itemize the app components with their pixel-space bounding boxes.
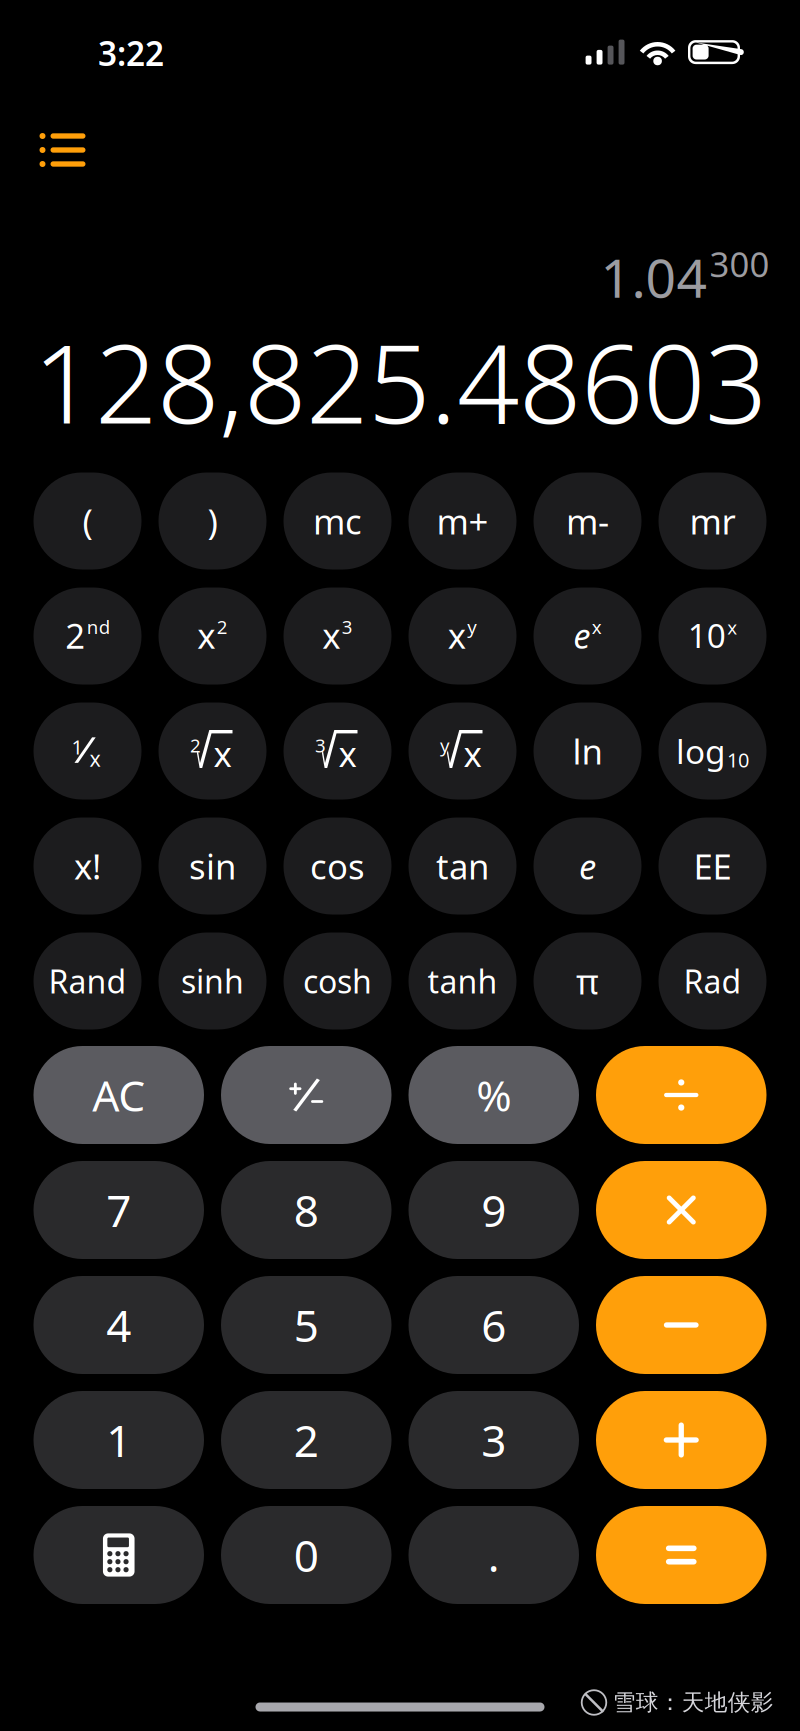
staticText: 300 xyxy=(709,241,769,287)
button[interactable]: ) xyxy=(158,472,266,569)
staticText: tan xyxy=(436,843,489,889)
staticText: x xyxy=(727,615,737,640)
button[interactable]: cos xyxy=(283,817,391,914)
button[interactable]: ( xyxy=(33,472,141,569)
staticText: 2 xyxy=(190,733,201,758)
button[interactable]: 2 xyxy=(158,702,266,799)
staticText: 3:22 xyxy=(98,31,164,75)
button[interactable]: 3 xyxy=(283,702,391,799)
button[interactable]: sinh xyxy=(158,932,266,1029)
staticText: x xyxy=(338,730,356,776)
button[interactable]: EE xyxy=(658,817,766,914)
staticText: Rand xyxy=(48,960,126,1002)
staticText: nd xyxy=(87,614,110,639)
button[interactable]: x xyxy=(158,587,266,684)
staticText: x xyxy=(322,612,340,658)
button[interactable]: 6 xyxy=(408,1276,579,1374)
staticText: x xyxy=(448,612,466,658)
button[interactable] xyxy=(596,1506,766,1604)
button[interactable] xyxy=(33,1506,204,1604)
button[interactable]: 1 xyxy=(33,702,141,799)
button[interactable]: mc xyxy=(283,472,391,569)
button[interactable]: . xyxy=(408,1506,579,1604)
button[interactable]: History xyxy=(19,113,105,187)
staticText: y xyxy=(467,614,477,639)
button[interactable]: y xyxy=(408,702,516,799)
staticText: mr xyxy=(689,498,735,544)
button[interactable]: 2 xyxy=(33,587,141,684)
staticText: m- xyxy=(566,498,609,544)
staticText: log xyxy=(676,729,726,773)
staticText: 2 xyxy=(65,612,85,658)
button[interactable]: m- xyxy=(533,472,641,569)
staticText: Rad xyxy=(683,960,741,1002)
button[interactable]: m+ xyxy=(408,472,516,569)
staticText: e xyxy=(579,843,596,889)
button[interactable]: 3 xyxy=(408,1391,579,1489)
staticText: % xyxy=(476,1067,511,1123)
button[interactable]: 1 xyxy=(33,1391,204,1489)
staticText: 3 xyxy=(481,1411,506,1469)
button[interactable]: x xyxy=(408,587,516,684)
staticText: 128,825.48603 xyxy=(33,308,767,454)
staticText: x xyxy=(89,744,100,773)
button[interactable] xyxy=(596,1391,766,1489)
staticText: AC xyxy=(92,1067,145,1123)
button[interactable]: cosh xyxy=(283,932,391,1029)
staticText: EE xyxy=(693,843,731,889)
button[interactable]: 10 xyxy=(658,587,766,684)
staticText: 2 xyxy=(217,614,228,639)
button[interactable]: e xyxy=(533,587,641,684)
staticText: 1.04 xyxy=(600,242,707,312)
staticText: mc xyxy=(313,498,362,544)
button[interactable]: ln xyxy=(533,702,641,799)
staticText: tanh xyxy=(427,960,497,1002)
staticText: 3 xyxy=(315,733,326,758)
button[interactable]: π xyxy=(533,932,641,1029)
button[interactable]: mr xyxy=(658,472,766,569)
button[interactable]: AC xyxy=(33,1046,204,1144)
button[interactable]: tanh xyxy=(408,932,516,1029)
button[interactable]: Rand xyxy=(33,932,141,1029)
button[interactable]: Rad xyxy=(658,932,766,1029)
staticText: cos xyxy=(310,843,365,889)
staticText: x! xyxy=(74,843,101,889)
staticText: ( xyxy=(82,498,92,544)
button[interactable]: e xyxy=(533,817,641,914)
button[interactable]: tan xyxy=(408,817,516,914)
button[interactable]: 9 xyxy=(408,1161,579,1259)
staticText: 0 xyxy=(294,1526,319,1584)
staticText: 10 xyxy=(688,613,726,657)
button[interactable]: 5 xyxy=(221,1276,391,1374)
button[interactable]: 7 xyxy=(33,1161,204,1259)
staticText: y xyxy=(440,733,450,758)
staticText: 1 xyxy=(106,1411,131,1469)
button[interactable] xyxy=(596,1276,766,1374)
button[interactable] xyxy=(596,1161,766,1259)
staticText: x xyxy=(213,730,231,776)
staticText: 6 xyxy=(481,1296,506,1354)
button[interactable]: 8 xyxy=(221,1161,391,1259)
staticText: 10 xyxy=(727,747,749,773)
staticText: 2 xyxy=(294,1411,319,1469)
button[interactable] xyxy=(221,1046,391,1144)
staticText: m+ xyxy=(436,498,488,544)
staticText: x xyxy=(463,730,481,776)
button[interactable]: 4 xyxy=(33,1276,204,1374)
button[interactable]: x xyxy=(283,587,391,684)
staticText: π xyxy=(576,958,599,1004)
staticText: ln xyxy=(572,728,602,774)
staticText: 9 xyxy=(481,1181,506,1239)
staticText: 5 xyxy=(294,1296,319,1354)
staticText: 3 xyxy=(342,614,353,639)
button[interactable]: log xyxy=(658,702,766,799)
button[interactable] xyxy=(596,1046,766,1144)
staticText: x xyxy=(197,612,215,658)
button[interactable]: 2 xyxy=(221,1391,391,1489)
button[interactable]: sin xyxy=(158,817,266,914)
button[interactable]: % xyxy=(408,1046,579,1144)
button[interactable]: 0 xyxy=(221,1506,391,1604)
staticText: sin xyxy=(189,843,236,889)
button[interactable]: x! xyxy=(33,817,141,914)
staticText: x xyxy=(592,614,602,639)
